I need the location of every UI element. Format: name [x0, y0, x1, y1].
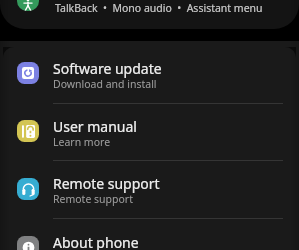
button[interactable]: Remote support [0, 161, 299, 218]
staticText: About phone [53, 233, 139, 250]
staticText: Learn more [53, 135, 111, 149]
staticText: Download and install [53, 77, 157, 91]
staticText: Remote support [53, 192, 133, 206]
staticText: TalkBack • Mono audio • Assistant menu [55, 1, 263, 15]
button[interactable]: Accessibility [0, 0, 299, 29]
staticText: Software update [53, 59, 162, 78]
button[interactable]: User manual [0, 104, 299, 160]
button[interactable]: Software update [0, 45, 299, 103]
staticText: Remote support [53, 174, 160, 193]
staticText: User manual [53, 117, 137, 136]
button[interactable]: Accessibility [17, 0, 39, 11]
button[interactable]: About phone [0, 219, 299, 250]
